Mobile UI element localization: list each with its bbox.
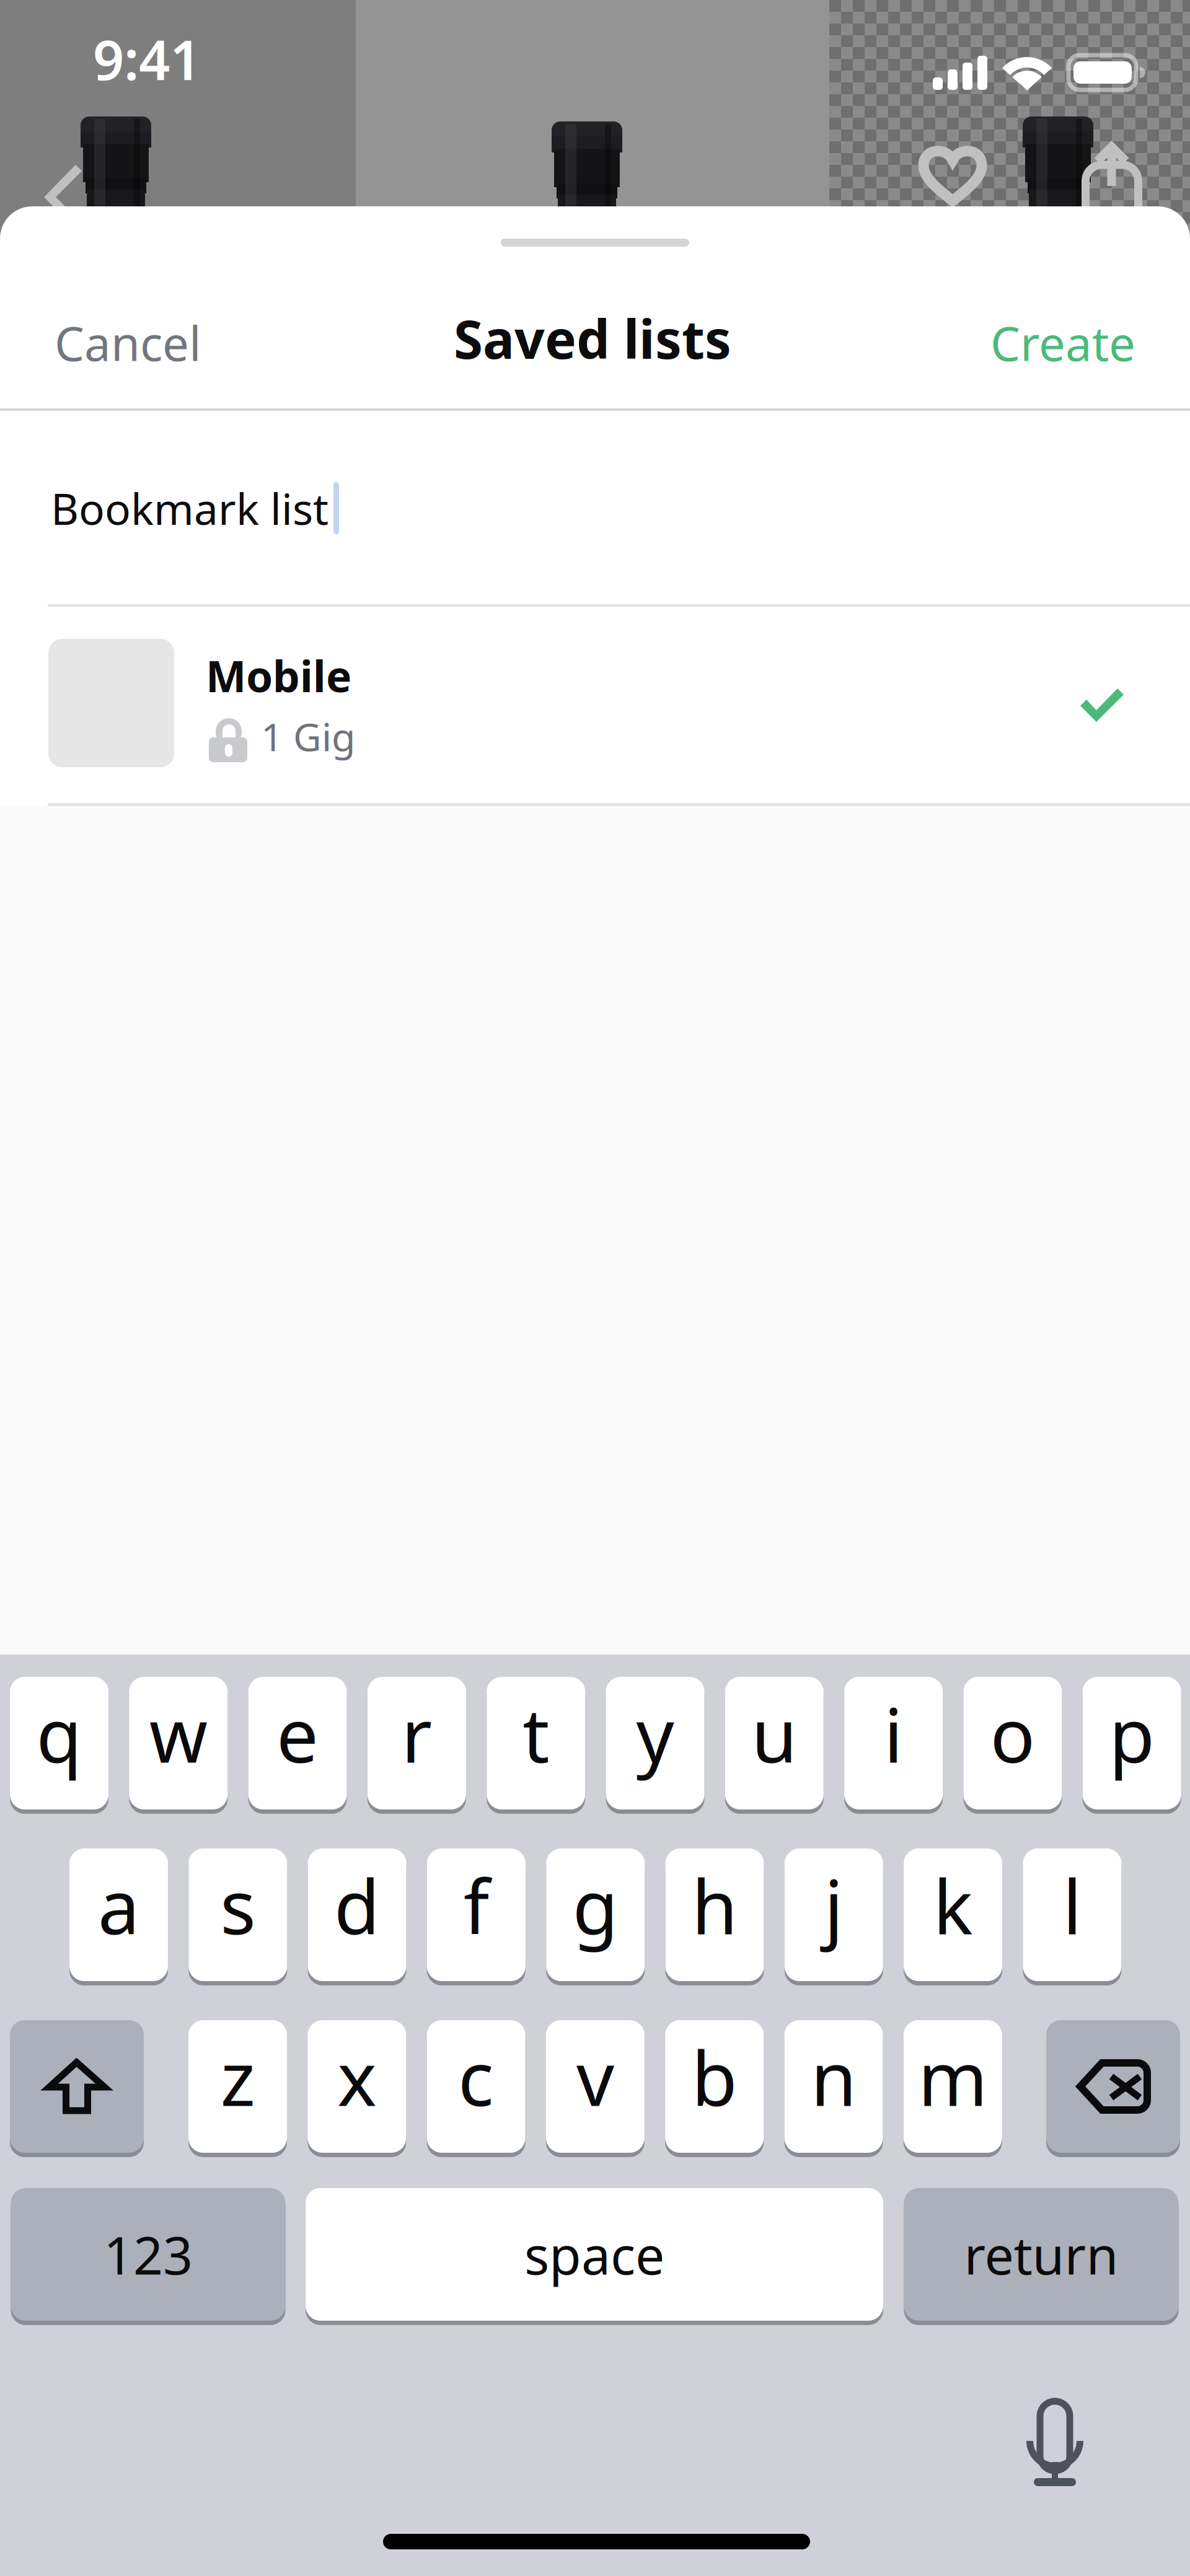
button[interactable]: k — [904, 1848, 1002, 1986]
button[interactable]: z — [188, 2020, 287, 2158]
button[interactable]: v — [546, 2020, 645, 2158]
staticText: Cancel — [55, 311, 201, 374]
staticText: x — [337, 2028, 376, 2127]
staticText: Create — [990, 311, 1135, 374]
staticText: 1 Gig — [261, 710, 356, 762]
staticText: w — [149, 1684, 208, 1783]
button[interactable]: e — [248, 1677, 347, 1814]
button[interactable]: j — [785, 1848, 883, 1986]
button[interactable]: Dictate — [1024, 2401, 1086, 2493]
staticText: r — [401, 1684, 432, 1783]
staticText: c — [458, 2028, 494, 2127]
button[interactable]: space — [306, 2188, 883, 2326]
staticText: j — [824, 1856, 843, 1955]
staticText: Saved lists — [454, 303, 731, 373]
staticText: g — [573, 1856, 618, 1955]
staticText: f — [464, 1856, 489, 1955]
button[interactable]: l — [1023, 1848, 1121, 1986]
staticText: h — [692, 1856, 738, 1955]
staticText: p — [1109, 1684, 1155, 1783]
staticText: n — [811, 2028, 857, 2127]
staticText: y — [636, 1684, 674, 1783]
button[interactable]: u — [725, 1677, 824, 1814]
button[interactable]: Key — [1046, 2020, 1180, 2158]
button[interactable]: s — [189, 1848, 287, 1986]
staticText: o — [990, 1684, 1035, 1783]
staticText: d — [334, 1856, 380, 1955]
staticText: v — [576, 2028, 614, 2127]
button[interactable]: x — [308, 2020, 406, 2158]
staticText: u — [751, 1684, 797, 1783]
button[interactable]: y — [606, 1677, 704, 1814]
staticText: 123 — [104, 2220, 193, 2289]
button[interactable]: n — [784, 2020, 883, 2158]
staticText: e — [276, 1684, 319, 1783]
button[interactable]: g — [546, 1848, 645, 1986]
button[interactable]: m — [904, 2020, 1002, 2158]
staticText: q — [36, 1684, 82, 1783]
button[interactable]: d — [308, 1848, 406, 1986]
button[interactable]: c — [427, 2020, 525, 2158]
button[interactable]: Cancel — [55, 281, 284, 405]
staticText: s — [220, 1856, 256, 1955]
staticText: l — [1063, 1856, 1082, 1955]
button[interactable]: w — [129, 1677, 228, 1814]
staticText: Mobile — [206, 647, 351, 704]
button[interactable]: q — [10, 1677, 108, 1814]
staticText: Bookmark list — [51, 480, 328, 537]
button[interactable]: t — [487, 1677, 585, 1814]
staticText: i — [884, 1684, 903, 1783]
button[interactable]: Back — [43, 161, 84, 233]
staticText: a — [98, 1856, 139, 1955]
button[interactable]: o — [963, 1677, 1062, 1814]
staticText: k — [933, 1856, 973, 1955]
staticText: 9:41 — [93, 23, 201, 95]
button[interactable]: Key — [10, 2020, 144, 2158]
button[interactable]: Mobile — [0, 604, 1190, 803]
staticText: z — [220, 2028, 255, 2127]
staticText: space — [524, 2220, 664, 2289]
button[interactable]: 123 — [11, 2188, 285, 2326]
staticText: return — [964, 2220, 1118, 2289]
staticText: t — [523, 1684, 549, 1783]
button[interactable]: Create — [906, 281, 1135, 405]
button[interactable]: p — [1083, 1677, 1181, 1814]
button[interactable]: return — [904, 2188, 1179, 2326]
button[interactable]: Add to favourites — [918, 144, 987, 203]
button[interactable]: i — [844, 1677, 943, 1814]
button[interactable]: a — [69, 1848, 168, 1986]
button[interactable]: b — [665, 2020, 764, 2158]
button[interactable]: h — [665, 1848, 764, 1986]
staticText: b — [692, 2028, 737, 2127]
button[interactable]: Share — [1086, 139, 1138, 224]
staticText: m — [918, 2028, 988, 2127]
button[interactable]: r — [367, 1677, 466, 1814]
button[interactable]: f — [427, 1848, 526, 1986]
